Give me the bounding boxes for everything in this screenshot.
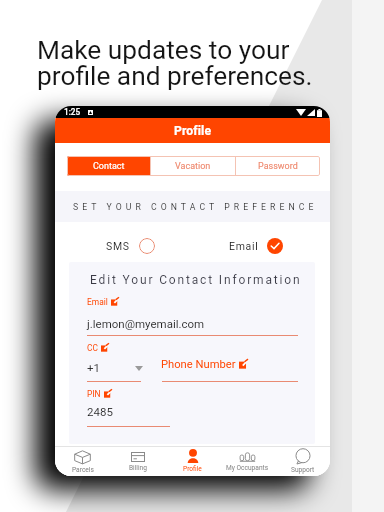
button[interactable]: Parcels bbox=[55, 447, 110, 476]
staticText: j.lemon@myemail.com bbox=[87, 317, 205, 330]
staticText: SMS bbox=[106, 240, 130, 252]
button[interactable]: Password bbox=[236, 156, 320, 176]
button[interactable]: My Occupants bbox=[220, 447, 275, 476]
staticText: Password bbox=[258, 161, 298, 172]
staticText: 2485 bbox=[87, 405, 113, 418]
staticText: Profile bbox=[174, 124, 212, 138]
staticText: Email bbox=[229, 240, 259, 252]
staticText: PIN bbox=[87, 389, 101, 399]
staticText: CC bbox=[87, 343, 98, 353]
staticText: Phone Number bbox=[161, 358, 236, 371]
staticText: Contact bbox=[93, 161, 125, 172]
button[interactable]: Contact bbox=[67, 156, 150, 176]
staticText: My Occupants bbox=[226, 464, 269, 472]
staticText: Profile bbox=[183, 465, 202, 473]
button[interactable]: Email bbox=[229, 238, 283, 254]
staticText: 1:25 bbox=[64, 107, 81, 117]
staticText: Parcels bbox=[72, 466, 94, 474]
button[interactable]: SMS bbox=[106, 238, 155, 254]
staticText: Make updates to your profile and prefere… bbox=[37, 35, 313, 92]
button[interactable]: Billing bbox=[110, 447, 165, 476]
staticText: SET YOUR CONTACT PREFERENCE bbox=[73, 202, 318, 212]
staticText: Vacation bbox=[175, 161, 211, 172]
button[interactable]: Vacation bbox=[151, 156, 235, 176]
staticText: Email bbox=[87, 297, 108, 307]
staticText: +1 bbox=[87, 361, 100, 374]
staticText: Billing bbox=[129, 464, 147, 472]
staticText: Support bbox=[291, 466, 315, 474]
button[interactable]: Profile bbox=[165, 447, 220, 476]
button[interactable]: Support bbox=[275, 447, 330, 476]
staticText: Edit Your Contact Information bbox=[90, 273, 302, 287]
